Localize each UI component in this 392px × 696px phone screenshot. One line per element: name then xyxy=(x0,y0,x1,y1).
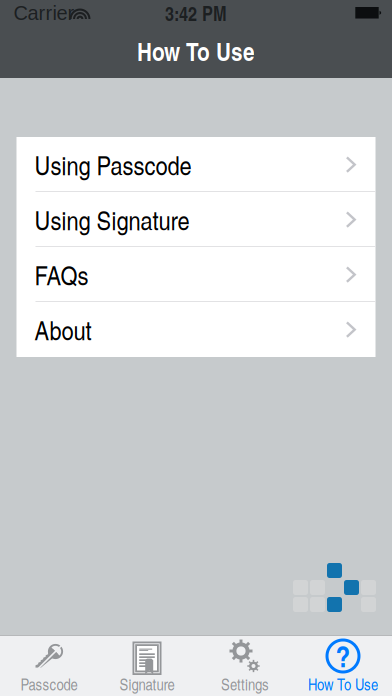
staticText: 3:42 PM xyxy=(165,0,227,27)
staticText: FAQs xyxy=(34,256,88,293)
staticText: Using Signature xyxy=(34,201,189,238)
button[interactable]: About xyxy=(16,302,375,357)
staticText: How To Use xyxy=(137,33,255,69)
button[interactable]: Using Passcode xyxy=(16,137,375,192)
staticText: ? xyxy=(335,635,350,676)
staticText: Using Passcode xyxy=(34,146,191,183)
staticText: Signature xyxy=(119,673,174,695)
staticText: About xyxy=(34,311,91,348)
button[interactable]: Settings xyxy=(196,635,294,696)
button[interactable]: FAQs xyxy=(16,247,375,302)
button[interactable]: Passcode xyxy=(0,635,98,696)
button[interactable]: Signature xyxy=(98,635,196,696)
button[interactable]: ? xyxy=(294,635,392,696)
staticText: Carrier xyxy=(13,2,74,24)
staticText: How To Use xyxy=(308,673,378,695)
staticText: Passcode xyxy=(20,673,77,695)
button[interactable]: Using Signature xyxy=(16,192,375,247)
staticText: Settings xyxy=(221,673,269,695)
